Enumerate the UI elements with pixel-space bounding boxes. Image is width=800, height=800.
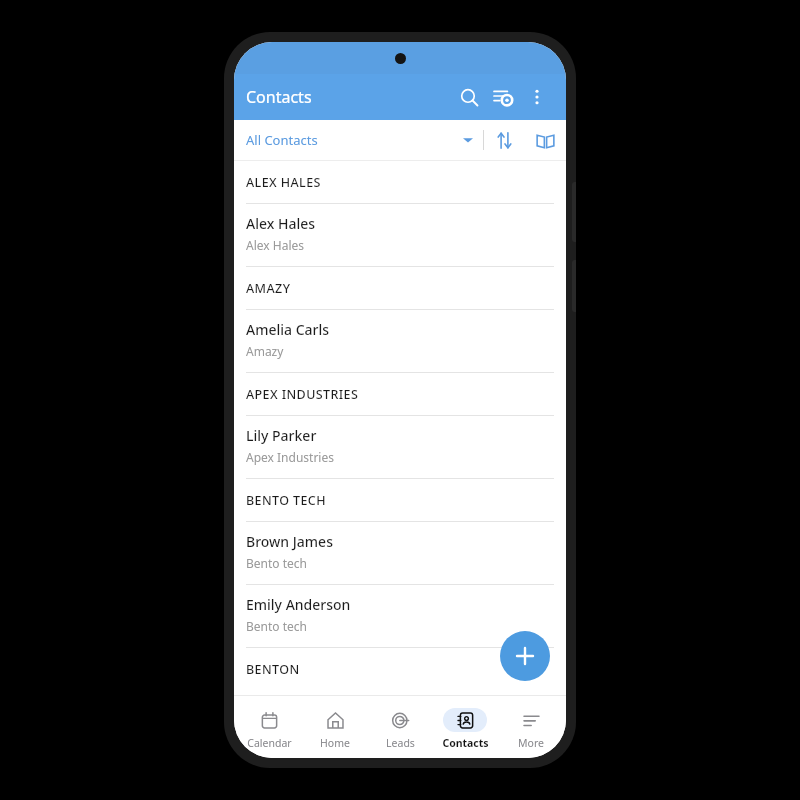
staticText: Emily Anderson	[246, 595, 351, 614]
staticText: Leads	[386, 736, 415, 750]
staticText: Alex Hales	[246, 214, 316, 233]
staticText: BENTO TECH	[246, 492, 326, 509]
staticText: Contacts	[442, 736, 489, 750]
button[interactable]: Contacts	[435, 704, 495, 750]
staticText: ALEX HALES	[246, 174, 321, 191]
staticText: More	[518, 736, 544, 750]
staticText: Amelia Carls	[246, 320, 330, 339]
button[interactable]: BENTON	[234, 648, 566, 690]
button[interactable]: Home	[305, 704, 365, 750]
button[interactable]: Lily Parker	[234, 416, 566, 478]
button[interactable]: AMAZY	[234, 267, 566, 309]
button[interactable]: Filter settings	[486, 80, 520, 114]
button[interactable]: ALEX HALES	[234, 161, 566, 203]
staticText: Apex Industries	[246, 449, 334, 465]
button[interactable]: APEX INDUSTRIES	[234, 373, 566, 415]
button[interactable]: Amelia Carls	[234, 310, 566, 372]
button[interactable]: Leads	[370, 704, 430, 750]
button[interactable]: Map view	[524, 120, 566, 160]
staticText: Alex Hales	[246, 237, 304, 253]
staticText: All Contacts	[246, 131, 318, 149]
button[interactable]: Alex Hales	[234, 204, 566, 266]
button[interactable]: BENTO TECH	[234, 479, 566, 521]
button[interactable]: Brown James	[234, 522, 566, 584]
button[interactable]: Calendar	[239, 704, 299, 750]
staticText: APEX INDUSTRIES	[246, 386, 359, 403]
staticText: BENTON	[246, 661, 300, 678]
button[interactable]: More options	[520, 80, 554, 114]
button[interactable]: All Contacts	[234, 120, 483, 160]
staticText: Bento tech	[246, 618, 307, 634]
button[interactable]: Sort	[484, 120, 524, 160]
staticText: Contacts	[246, 86, 312, 108]
staticText: Amazy	[246, 343, 284, 359]
staticText: Brown James	[246, 532, 333, 551]
staticText: Home	[320, 736, 350, 750]
button[interactable]: More	[501, 704, 561, 750]
button[interactable]: Search	[452, 80, 486, 114]
button[interactable]: Emily Anderson	[234, 585, 566, 647]
staticText: AMAZY	[246, 280, 291, 297]
staticText: Calendar	[247, 736, 292, 750]
button[interactable]: Add contact	[500, 631, 550, 681]
staticText: Bento tech	[246, 555, 307, 571]
staticText: Lily Parker	[246, 426, 317, 445]
